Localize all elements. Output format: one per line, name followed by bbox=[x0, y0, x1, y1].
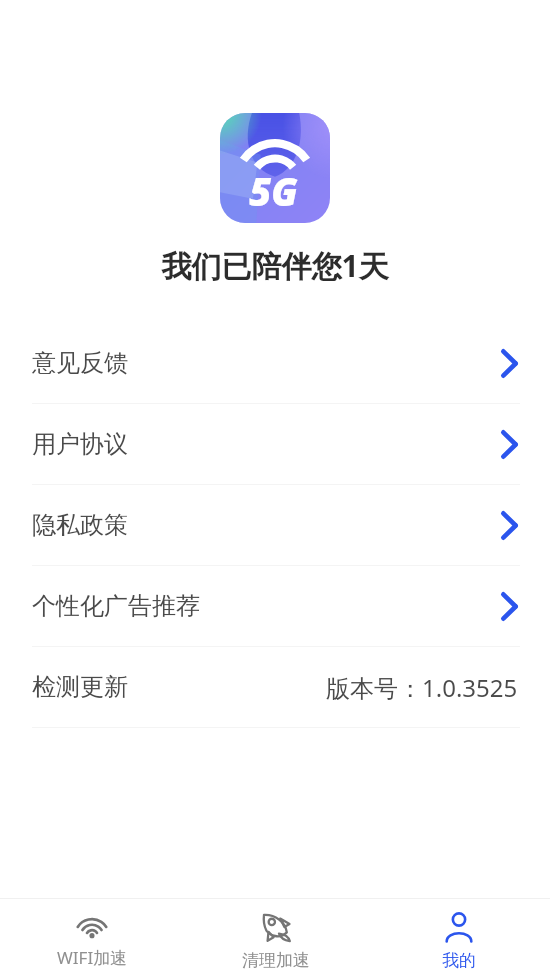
other: WIFI加速 bbox=[75, 912, 109, 938]
staticText: 版本号：1.0.3525 bbox=[326, 671, 518, 704]
staticText: 我们已陪伴您1天 bbox=[0, 245, 550, 286]
staticText: 5G bbox=[220, 165, 327, 223]
other: 清理加速 bbox=[261, 912, 291, 942]
button[interactable]: 意见反馈 bbox=[0, 323, 550, 404]
staticText: 用户协议 bbox=[32, 429, 128, 459]
button[interactable]: 隐私政策 bbox=[0, 485, 550, 566]
staticText: 检测更新 bbox=[32, 672, 128, 702]
button[interactable]: 清理加速 bbox=[184, 899, 367, 977]
other: 我的 bbox=[444, 912, 474, 942]
button[interactable]: WIFI加速 bbox=[0, 899, 184, 977]
staticText: 清理加速 bbox=[242, 950, 310, 971]
button[interactable]: 个性化广告推荐 bbox=[0, 566, 550, 647]
staticText: 个性化广告推荐 bbox=[32, 591, 200, 621]
staticText: 我的 bbox=[442, 950, 476, 971]
button[interactable]: 我的 bbox=[367, 899, 550, 977]
staticText: WIFI加速 bbox=[57, 946, 128, 969]
staticText: 隐私政策 bbox=[32, 510, 128, 540]
button[interactable]: 用户协议 bbox=[0, 404, 550, 485]
staticText: 意见反馈 bbox=[32, 348, 128, 378]
button[interactable]: 检测更新 bbox=[0, 647, 550, 728]
